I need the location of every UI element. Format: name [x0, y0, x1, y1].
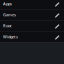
staticText: Apps: [3, 1, 12, 6]
staticText: Widgets: [3, 34, 18, 39]
staticText: Games: [3, 12, 16, 17]
button[interactable]: Widgets: [0, 31, 64, 42]
button[interactable]: Root: [0, 20, 64, 31]
staticText: Root: [3, 23, 12, 28]
button[interactable]: Games: [0, 9, 64, 20]
button[interactable]: Apps: [0, 0, 64, 9]
